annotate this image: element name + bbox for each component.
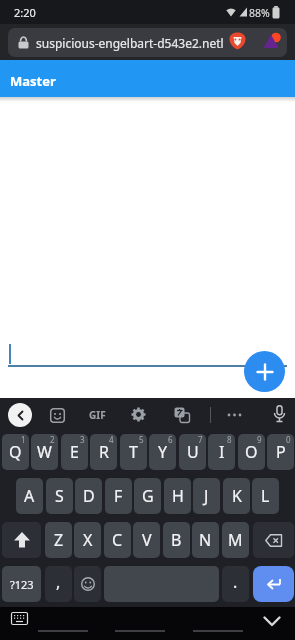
button[interactable]: Z bbox=[45, 522, 72, 558]
button[interactable] bbox=[253, 566, 294, 602]
button[interactable]: H bbox=[164, 478, 191, 514]
button[interactable] bbox=[8, 403, 32, 427]
staticText: M bbox=[228, 529, 243, 551]
staticText: 4 bbox=[109, 434, 114, 445]
staticText: S bbox=[55, 485, 64, 507]
button[interactable]: J bbox=[193, 478, 220, 514]
button[interactable]: A bbox=[16, 478, 43, 514]
button[interactable]: K bbox=[223, 478, 250, 514]
button[interactable]: R bbox=[90, 434, 117, 470]
staticText: N bbox=[199, 529, 212, 551]
staticText: B bbox=[171, 529, 182, 551]
staticText: G bbox=[142, 485, 154, 507]
staticText: A bbox=[24, 485, 35, 507]
button[interactable] bbox=[227, 413, 242, 417]
button[interactable]: T bbox=[120, 434, 147, 470]
staticText: 2 bbox=[50, 434, 55, 445]
staticText: Master bbox=[10, 72, 56, 90]
button[interactable]: O bbox=[238, 434, 265, 470]
button[interactable]: B bbox=[163, 522, 190, 558]
button[interactable]: Y bbox=[149, 434, 176, 470]
staticText: U bbox=[187, 441, 199, 463]
button[interactable]: I bbox=[208, 434, 235, 470]
staticText: Y bbox=[158, 441, 168, 463]
button[interactable] bbox=[253, 522, 294, 558]
button[interactable] bbox=[74, 566, 101, 602]
staticText: R bbox=[99, 441, 109, 463]
button[interactable]: E bbox=[61, 434, 88, 470]
staticText: 6 bbox=[168, 434, 173, 445]
staticText: I bbox=[219, 441, 225, 463]
staticText: . bbox=[233, 571, 238, 593]
staticText: D bbox=[83, 485, 95, 507]
staticText: 7 bbox=[198, 434, 203, 445]
button[interactable] bbox=[130, 406, 147, 423]
button[interactable]: N bbox=[192, 522, 219, 558]
staticText: 9 bbox=[257, 434, 262, 445]
button[interactable] bbox=[273, 405, 286, 424]
staticText: E bbox=[70, 441, 79, 463]
staticText: P bbox=[276, 441, 286, 463]
button[interactable]: L bbox=[252, 478, 279, 514]
button[interactable]: Q bbox=[2, 434, 29, 470]
staticText: suspicious-engelbart-d543e2.netl bbox=[36, 35, 226, 51]
button[interactable] bbox=[174, 407, 190, 423]
staticText: 88% bbox=[249, 6, 270, 20]
button[interactable] bbox=[50, 408, 65, 423]
button[interactable]: P bbox=[267, 434, 294, 470]
button[interactable]: D bbox=[75, 478, 102, 514]
staticText: J bbox=[204, 485, 209, 507]
staticText: Q bbox=[9, 441, 22, 463]
staticText: V bbox=[142, 529, 152, 551]
staticText: X bbox=[83, 529, 93, 551]
staticText: 8 bbox=[227, 434, 232, 445]
button[interactable] bbox=[229, 32, 246, 50]
staticText: O bbox=[245, 441, 258, 463]
button[interactable]: M bbox=[222, 522, 249, 558]
button[interactable]: X bbox=[74, 522, 101, 558]
button[interactable] bbox=[11, 612, 28, 625]
staticText: F bbox=[114, 485, 123, 507]
staticText: ?123 bbox=[10, 577, 34, 592]
button[interactable] bbox=[263, 32, 282, 50]
button[interactable]: F bbox=[105, 478, 132, 514]
staticText: 1 bbox=[21, 434, 26, 445]
staticText: C bbox=[112, 529, 123, 551]
staticText: Z bbox=[54, 529, 64, 551]
button[interactable] bbox=[244, 351, 285, 392]
button[interactable]: suspicious-engelbart-d543e2.netl bbox=[8, 28, 287, 57]
button[interactable]: V bbox=[133, 522, 160, 558]
staticText: 5 bbox=[139, 434, 144, 445]
button[interactable]: G bbox=[134, 478, 161, 514]
button[interactable]: W bbox=[31, 434, 58, 470]
button[interactable]: S bbox=[46, 478, 73, 514]
staticText: 0 bbox=[286, 434, 291, 445]
button[interactable] bbox=[2, 522, 41, 558]
button[interactable] bbox=[263, 616, 281, 627]
button[interactable]: C bbox=[104, 522, 131, 558]
staticText: 2:20 bbox=[14, 5, 36, 20]
staticText: W bbox=[37, 441, 52, 463]
staticText: K bbox=[232, 485, 242, 507]
button[interactable]: ?123 bbox=[2, 566, 41, 602]
staticText: T bbox=[129, 441, 138, 463]
staticText: H bbox=[172, 485, 184, 507]
button[interactable]: GIF bbox=[89, 408, 106, 422]
button[interactable]: Master bbox=[0, 60, 295, 97]
staticText: 3 bbox=[80, 434, 85, 445]
staticText: , bbox=[56, 571, 61, 593]
button[interactable]: . bbox=[222, 566, 249, 602]
button[interactable]: , bbox=[45, 566, 72, 602]
staticText: L bbox=[261, 485, 270, 507]
button[interactable]: U bbox=[179, 434, 206, 470]
